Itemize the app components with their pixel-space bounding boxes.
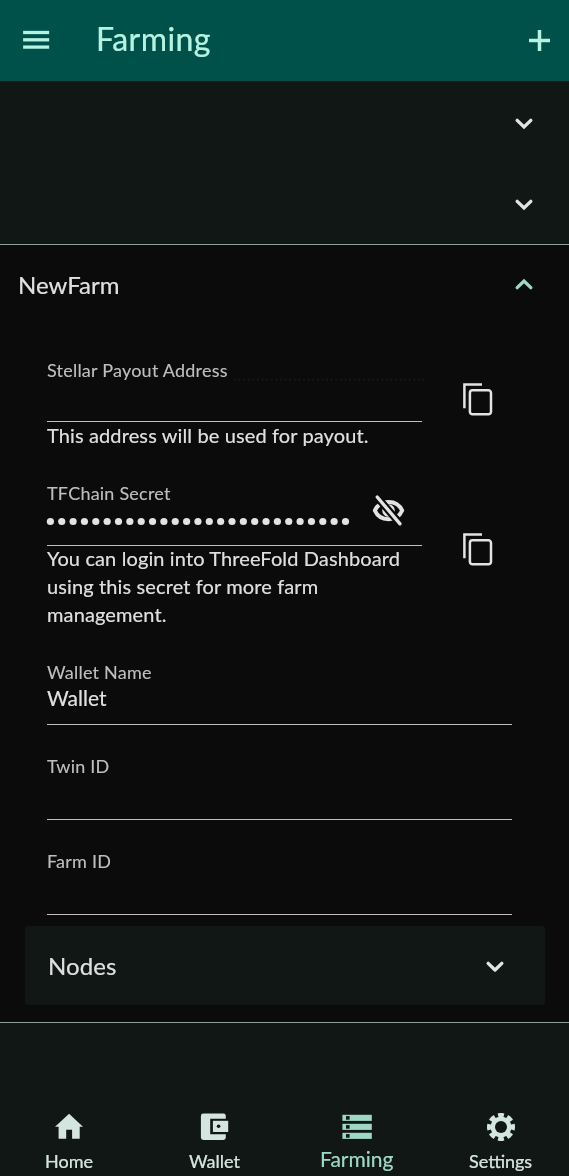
staticText: Farming — [320, 1146, 394, 1171]
button[interactable]: NewFarm — [0, 245, 569, 325]
staticText: Wallet — [189, 1150, 240, 1172]
staticText: Twin ID — [47, 755, 110, 777]
staticText: Farm ID — [47, 850, 112, 872]
button[interactable]: Open navigation menu — [12, 16, 60, 64]
staticText: Settings — [469, 1150, 533, 1172]
button[interactable]: Show secret — [364, 486, 412, 534]
button[interactable]: Farming — [286, 1023, 428, 1176]
staticText: NewFarm — [18, 270, 120, 299]
staticText: Stellar Payout Address — [47, 359, 228, 381]
button[interactable]: Expand farm — [500, 99, 548, 147]
staticText: Nodes — [48, 951, 117, 980]
button[interactable]: Wallet — [143, 1023, 285, 1176]
staticText: Wallet — [47, 685, 107, 710]
button[interactable]: Nodes — [25, 926, 545, 1005]
button[interactable]: Expand farm — [500, 180, 548, 228]
button[interactable]: Copy to clipboard — [453, 375, 501, 423]
staticText: This address will be used for payout. — [47, 423, 369, 447]
staticText: TFChain Secret — [47, 482, 171, 504]
staticText: Wallet Name — [47, 661, 152, 683]
button[interactable]: Add farm — [515, 16, 563, 64]
staticText: Home — [45, 1150, 93, 1172]
staticText: Farming — [96, 19, 211, 57]
button[interactable]: Home — [0, 1023, 140, 1176]
staticText: You can login into ThreeFold Dashboard u… — [47, 546, 401, 626]
button[interactable]: Settings — [430, 1023, 569, 1176]
button[interactable]: Copy to clipboard — [453, 525, 501, 573]
